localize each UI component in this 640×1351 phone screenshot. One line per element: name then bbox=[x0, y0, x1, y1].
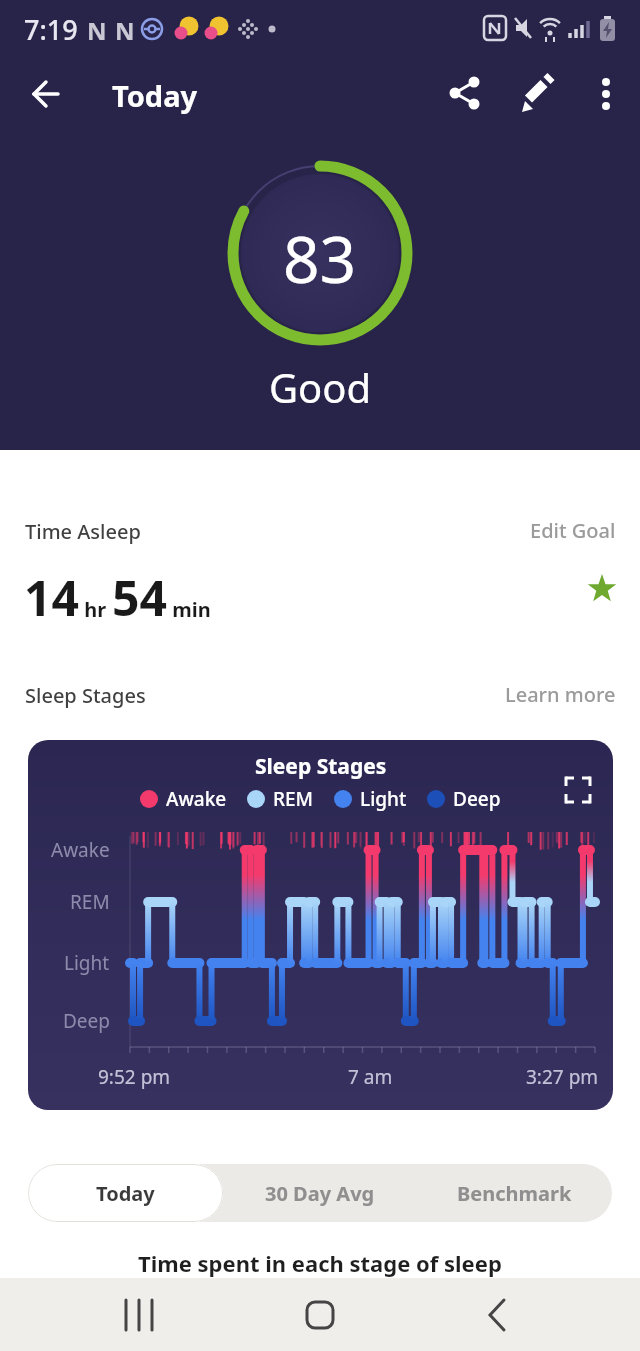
staticText: 83 bbox=[283, 215, 357, 302]
staticText: Good bbox=[269, 360, 372, 414]
staticText: 3:27 pm bbox=[526, 1064, 599, 1090]
staticText: 9:52 pm bbox=[98, 1064, 171, 1090]
staticText: 7:19 bbox=[24, 11, 78, 48]
button[interactable]: Learn more bbox=[460, 678, 616, 710]
staticText: Time Asleep bbox=[25, 518, 141, 545]
staticText: 30 Day Avg bbox=[265, 1180, 375, 1207]
staticText: 7 am bbox=[348, 1064, 393, 1090]
button[interactable]: Edit Goal bbox=[480, 514, 616, 546]
staticText: hr bbox=[79, 596, 112, 623]
staticText: REM bbox=[273, 786, 314, 812]
staticText: N bbox=[115, 14, 135, 47]
staticText: 14 bbox=[24, 565, 79, 630]
staticText: Light bbox=[360, 786, 407, 812]
button[interactable]: Today bbox=[28, 1164, 222, 1222]
button[interactable] bbox=[442, 70, 490, 118]
button[interactable]: 30 Day Avg bbox=[222, 1164, 417, 1222]
staticText: Awake bbox=[166, 786, 227, 812]
staticText: Light bbox=[64, 950, 110, 976]
staticText: Sleep Stages bbox=[25, 682, 146, 709]
button[interactable] bbox=[20, 70, 68, 118]
button[interactable] bbox=[516, 70, 564, 118]
staticText: Sleep Stages bbox=[255, 752, 387, 781]
staticText: Awake bbox=[51, 837, 110, 863]
staticText: Learn more bbox=[505, 681, 616, 708]
staticText: Time spent in each stage of sleep bbox=[138, 1248, 502, 1278]
staticText: Benchmark bbox=[457, 1180, 572, 1207]
staticText: N bbox=[87, 14, 107, 47]
staticText: 54 bbox=[112, 565, 167, 630]
staticText: Deep bbox=[453, 786, 501, 812]
staticText: Edit Goal bbox=[530, 517, 616, 544]
button[interactable] bbox=[584, 70, 628, 118]
staticText: min bbox=[167, 596, 211, 623]
button[interactable] bbox=[558, 770, 598, 810]
button[interactable] bbox=[285, 1290, 355, 1340]
button[interactable] bbox=[104, 1290, 174, 1340]
button[interactable]: Benchmark bbox=[417, 1164, 612, 1222]
button[interactable] bbox=[462, 1290, 532, 1340]
staticText: Deep bbox=[63, 1008, 110, 1034]
staticText: Today bbox=[112, 76, 198, 115]
staticText: Today bbox=[96, 1180, 155, 1207]
staticText: REM bbox=[70, 889, 110, 915]
